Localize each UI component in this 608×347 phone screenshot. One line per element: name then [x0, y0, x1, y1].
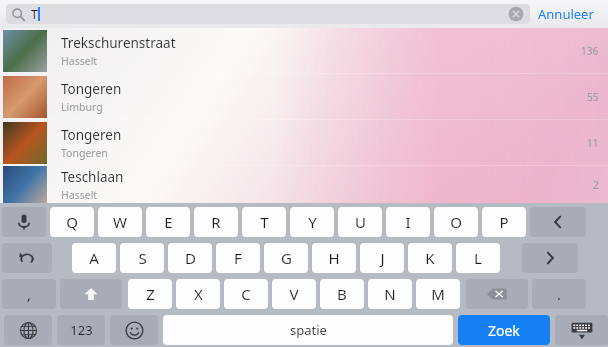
staticText: L [474, 248, 482, 268]
button[interactable]: T [6, 4, 530, 24]
button[interactable]: D [168, 243, 212, 273]
staticText: J [380, 248, 385, 268]
staticText: 2 [593, 178, 599, 192]
staticText: D [185, 248, 196, 268]
staticText: spatie [290, 321, 327, 339]
button[interactable]: B [320, 279, 364, 309]
button[interactable]: Emoji [110, 315, 158, 345]
staticText: Tongeren [61, 126, 122, 144]
button[interactable]: V [272, 279, 316, 309]
button[interactable]: E [146, 207, 190, 237]
button[interactable]: G [264, 243, 308, 273]
staticText: T [260, 212, 269, 232]
staticText: V [289, 284, 299, 304]
button[interactable]: P [482, 207, 526, 237]
button[interactable]: J [360, 243, 404, 273]
staticText: Annuleer [538, 5, 594, 23]
staticText: X [194, 284, 203, 304]
staticText: Q [66, 212, 78, 232]
staticText: O [450, 212, 462, 232]
button[interactable]: C [224, 279, 268, 309]
staticText: M [431, 284, 445, 304]
button[interactable]: Tongeren [0, 74, 608, 120]
staticText: C [241, 284, 251, 304]
button[interactable]: spatie [163, 315, 453, 345]
button[interactable]: Next [522, 243, 578, 273]
staticText: . [557, 285, 561, 304]
button[interactable]: Teschlaan [0, 166, 608, 203]
staticText: 11 [587, 136, 599, 150]
button[interactable]: Annuleer [530, 5, 602, 23]
staticText: Y [308, 212, 317, 232]
staticText: T [31, 6, 38, 22]
button[interactable]: Q [50, 207, 94, 237]
staticText: H [328, 248, 340, 268]
staticText: Zoek [488, 321, 520, 340]
staticText: 136 [581, 44, 599, 58]
button[interactable]: F [216, 243, 260, 273]
button[interactable]: Change keyboard [4, 315, 52, 345]
button[interactable]: Dictate [2, 207, 46, 237]
button[interactable]: Zoek [458, 315, 550, 345]
staticText: I [405, 212, 411, 232]
button[interactable]: M [416, 279, 460, 309]
staticText: Trekschurenstraat [61, 34, 176, 52]
button[interactable]: Backspace [466, 279, 528, 309]
button[interactable]: S [120, 243, 164, 273]
staticText: 55 [587, 90, 599, 104]
staticText: Tongeren [61, 146, 108, 160]
staticText: Limburg [61, 100, 103, 114]
staticText: P [499, 212, 509, 232]
button[interactable]: 123 [57, 315, 105, 345]
button[interactable]: Undo [2, 243, 52, 273]
button[interactable]: Z [128, 279, 172, 309]
button[interactable]: N [368, 279, 412, 309]
staticText: Tongeren [61, 80, 122, 98]
button[interactable]: , [2, 279, 56, 309]
staticText: Teschlaan [61, 168, 124, 186]
button[interactable]: I [386, 207, 430, 237]
staticText: A [89, 248, 99, 268]
staticText: Hasselt [61, 54, 98, 68]
staticText: Hasselt [61, 188, 98, 202]
button[interactable]: H [312, 243, 356, 273]
button[interactable]: W [98, 207, 142, 237]
staticText: N [384, 284, 396, 304]
staticText: S [138, 248, 147, 268]
staticText: F [234, 248, 242, 268]
staticText: G [281, 248, 292, 268]
staticText: B [337, 284, 347, 304]
button[interactable]: Tongeren [0, 120, 608, 166]
button[interactable]: . [532, 279, 586, 309]
button[interactable]: X [176, 279, 220, 309]
button[interactable]: R [194, 207, 238, 237]
staticText: Z [146, 284, 155, 304]
button[interactable]: Clear text [508, 6, 524, 22]
button[interactable]: Shift [60, 279, 122, 309]
button[interactable]: O [434, 207, 478, 237]
button[interactable]: L [456, 243, 500, 273]
staticText: R [211, 212, 221, 232]
staticText: U [355, 212, 366, 232]
button[interactable]: Previous [530, 207, 586, 237]
button[interactable]: A [72, 243, 116, 273]
staticText: , [27, 285, 31, 304]
button[interactable]: T [242, 207, 286, 237]
button[interactable]: U [338, 207, 382, 237]
button[interactable]: Hide keyboard [555, 315, 608, 345]
staticText: K [425, 248, 435, 268]
staticText: 123 [70, 321, 93, 339]
button[interactable]: Trekschurenstraat [0, 28, 608, 74]
staticText: W [113, 212, 127, 232]
button[interactable]: Y [290, 207, 334, 237]
button[interactable]: K [408, 243, 452, 273]
staticText: E [164, 212, 173, 232]
